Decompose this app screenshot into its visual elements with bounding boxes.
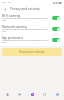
- button[interactable]: Toggle: [52, 27, 60, 31]
- button[interactable]: Bluetooth scanning: [0, 24, 64, 35]
- button[interactable]: Wi-Fi scanning: [0, 13, 64, 24]
- button[interactable]: Profile: [52, 88, 63, 100]
- button[interactable]: Library: [14, 88, 25, 100]
- staticText: Privacy and security: [10, 7, 40, 11]
- button[interactable]: Home: [2, 88, 13, 100]
- staticText: 9:41: [2, 1, 7, 4]
- staticText: Wi-Fi scanning: [2, 14, 21, 18]
- staticText: Let apps and services scan for nearby de…: [2, 39, 51, 43]
- staticText: Review your settings: [19, 50, 45, 54]
- staticText: Let apps and services scan for nearby de…: [2, 17, 51, 21]
- button[interactable]: Back: [0, 5, 10, 13]
- staticText: Let apps and services scan for nearby de…: [2, 28, 51, 32]
- button[interactable]: Review your settings: [2, 48, 62, 56]
- button[interactable]: Toggle: [52, 16, 60, 20]
- button[interactable]: App permissions: [0, 35, 64, 46]
- button[interactable]: Chat: [39, 88, 50, 100]
- staticText: Bluetooth scanning: [2, 25, 27, 29]
- button[interactable]: Camera: [27, 88, 38, 100]
- staticText: LTE: [8, 1, 12, 4]
- button[interactable]: Toggle: [52, 38, 60, 42]
- staticText: App permissions: [2, 36, 24, 40]
